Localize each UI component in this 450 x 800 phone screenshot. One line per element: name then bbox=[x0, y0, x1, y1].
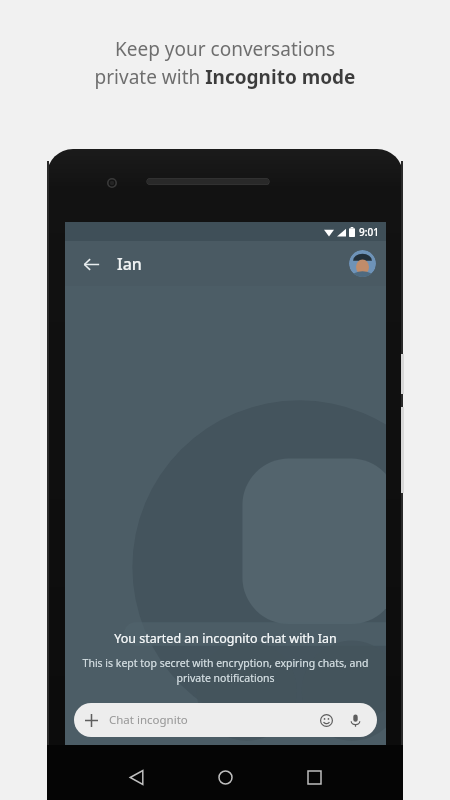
button[interactable]: Contact photo bbox=[349, 250, 376, 277]
button[interactable]: Back bbox=[75, 248, 107, 280]
button[interactable]: Voice message bbox=[344, 709, 366, 731]
staticText: You started an incognito chat with Ian bbox=[114, 630, 337, 647]
button[interactable]: Ian bbox=[117, 253, 142, 275]
staticText: This is kept top secret with encryption,… bbox=[81, 656, 370, 685]
staticText: Keep your conversations private with Inc… bbox=[0, 36, 450, 90]
button[interactable]: Chat incognito bbox=[74, 703, 377, 737]
staticText: 9:01 bbox=[359, 225, 379, 239]
button[interactable]: Recent apps bbox=[297, 760, 331, 794]
button[interactable]: Home bbox=[208, 760, 242, 794]
button[interactable]: Back bbox=[119, 760, 153, 794]
button[interactable]: Emoji bbox=[315, 709, 337, 731]
staticText: Chat incognito bbox=[109, 712, 188, 728]
